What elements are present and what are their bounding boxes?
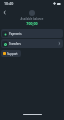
- staticText: 10:40: [4, 1, 14, 6]
- staticText: Payments: [9, 32, 22, 36]
- staticText: Transfers: [9, 42, 21, 46]
- button[interactable]: Transfers: [1, 39, 63, 48]
- button[interactable]: Profile: [29, 10, 35, 16]
- staticText: Support: [7, 52, 18, 56]
- button[interactable]: Back: [1, 9, 8, 16]
- button[interactable]: Support: [1, 50, 21, 57]
- button[interactable]: Payments: [1, 29, 63, 38]
- staticText: Available balance: [0, 17, 64, 21]
- staticText: 700,00: [0, 21, 64, 26]
